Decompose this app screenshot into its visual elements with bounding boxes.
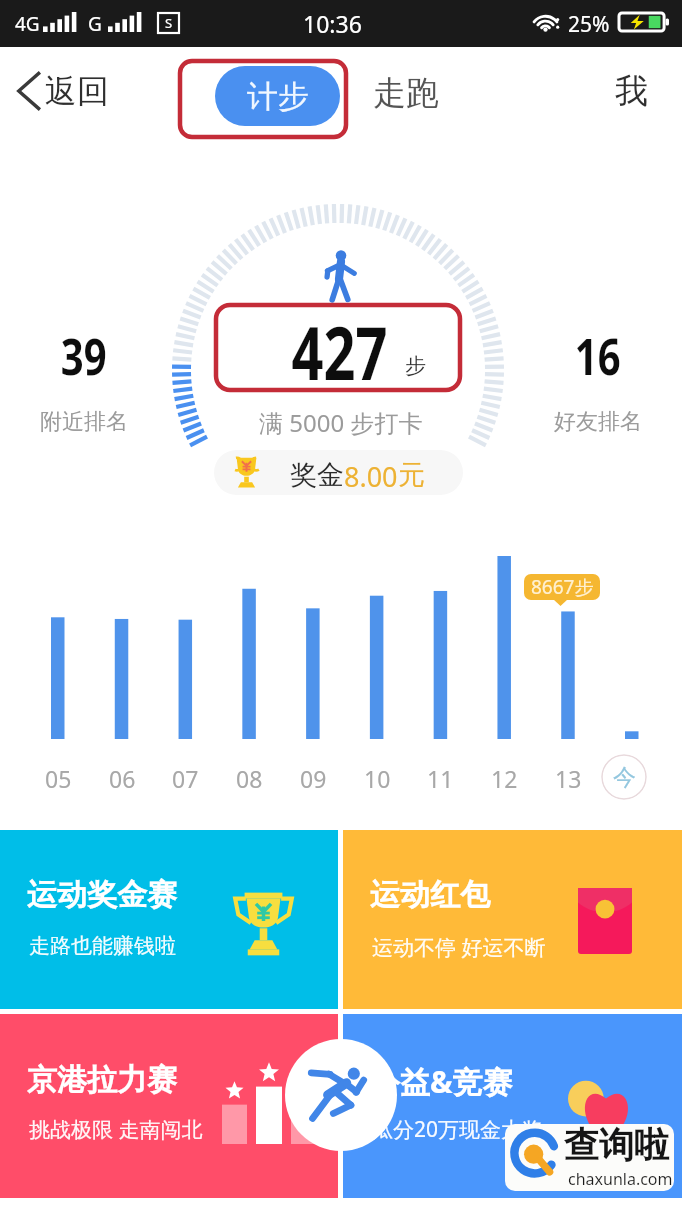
- staticText: 8667步: [531, 574, 594, 600]
- staticText: 07: [172, 763, 199, 794]
- button[interactable]: 开始跑步: [285, 1039, 397, 1151]
- staticText: 附近排名: [40, 408, 128, 436]
- button[interactable]: 京港拉力赛: [0, 1014, 338, 1198]
- staticText: 返回: [45, 71, 109, 111]
- button[interactable]: 运动奖金赛: [0, 830, 338, 1009]
- staticText: 今: [613, 763, 636, 792]
- staticText: 挑战极限 走南闯北: [29, 1115, 203, 1144]
- staticText: 05: [45, 763, 72, 794]
- staticText: 我: [615, 70, 648, 112]
- staticText: 好友排名: [554, 408, 642, 436]
- staticText: 公益&竞赛: [370, 1061, 513, 1102]
- staticText: 10: [364, 763, 391, 794]
- staticText: 京港拉力赛: [27, 1061, 177, 1099]
- staticText: 11: [427, 763, 454, 794]
- staticText: 08: [236, 763, 263, 794]
- staticText: 39: [61, 322, 107, 390]
- button[interactable]: 今天: [601, 754, 647, 800]
- staticText: 运动奖金赛: [27, 876, 177, 914]
- staticText: 步: [405, 353, 426, 379]
- staticText: 16: [575, 322, 621, 390]
- staticText: chaxunla.com: [568, 1168, 673, 1190]
- staticText: 06: [109, 763, 136, 794]
- staticText: 计步: [247, 77, 309, 116]
- staticText: 走跑: [373, 72, 439, 114]
- staticText: 满 5000 步打卡: [259, 406, 423, 439]
- staticText: S: [165, 14, 173, 32]
- staticText: 奖金: [290, 458, 344, 492]
- button[interactable]: 公益&竞赛: [343, 1014, 682, 1198]
- staticText: 427: [292, 301, 387, 390]
- button[interactable]: 运动红包: [343, 830, 682, 1009]
- staticText: G: [88, 11, 102, 37]
- staticText: 25%: [568, 10, 610, 39]
- staticText: 走路也能赚钱啦: [29, 933, 176, 959]
- staticText: 瓜分20万现金大奖: [372, 1115, 544, 1144]
- button[interactable]: 返回: [14, 68, 109, 114]
- staticText: 10:36: [303, 8, 362, 39]
- staticText: 运动不停 好运不断: [372, 933, 546, 962]
- staticText: 8.00: [344, 458, 398, 495]
- staticText: 13: [555, 763, 582, 794]
- button[interactable]: 走跑: [373, 72, 439, 114]
- staticText: 4G: [15, 11, 40, 37]
- staticText: 运动红包: [370, 876, 490, 914]
- staticText: 09: [300, 763, 327, 794]
- staticText: 12: [491, 763, 518, 794]
- staticText: 元: [398, 458, 425, 492]
- button[interactable]: 奖金: [214, 450, 463, 495]
- button[interactable]: 我: [615, 70, 648, 112]
- button[interactable]: 计步: [215, 66, 340, 126]
- staticText: 查询啦: [564, 1124, 669, 1167]
